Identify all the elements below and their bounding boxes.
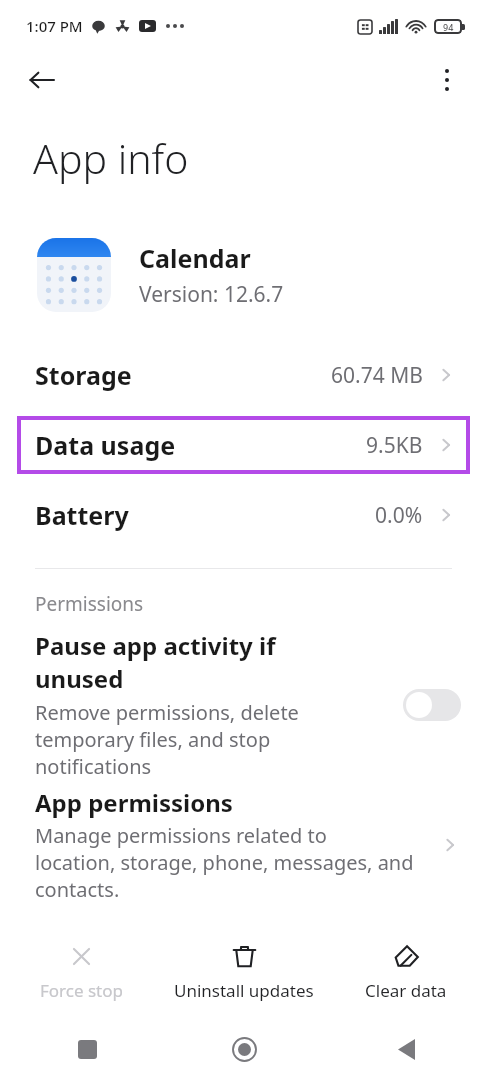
button[interactable]: Pause app activity if unused toggle [403, 689, 461, 721]
button[interactable]: Uninstall updates [163, 937, 325, 1008]
staticText: Data usage [35, 428, 176, 462]
staticText: Force stop [40, 979, 123, 1002]
staticText: 1:07 PM [26, 16, 83, 36]
staticText: location, storage, phone, messages, and [35, 849, 414, 876]
button[interactable]: Data usage [17, 416, 470, 474]
staticText: 60.74 MB [331, 361, 423, 390]
button[interactable]: Pause app activity if [0, 625, 487, 784]
staticText: 94 [443, 21, 454, 33]
staticText: App info [33, 130, 189, 186]
staticText: 0.0% [375, 501, 423, 530]
staticText: Permissions [35, 591, 144, 617]
staticText: Pause app activity if [35, 629, 276, 662]
staticText: temporary files, and stop [35, 726, 271, 753]
button[interactable]: Home [163, 1018, 325, 1080]
button[interactable]: Back [20, 58, 64, 102]
staticText: Calendar [139, 241, 251, 275]
button[interactable]: Back [325, 1018, 487, 1080]
button[interactable]: Storage [0, 340, 487, 410]
staticText: unused [35, 662, 124, 695]
button[interactable]: Force stop [0, 937, 163, 1008]
button[interactable]: Recent apps [0, 1018, 163, 1080]
staticText: Clear data [365, 979, 447, 1002]
staticText: Battery [35, 498, 129, 532]
staticText: contacts. [35, 876, 120, 903]
button[interactable]: More options [425, 58, 469, 102]
button[interactable]: App permissions [0, 784, 487, 903]
staticText: Uninstall updates [174, 979, 314, 1002]
button[interactable]: Clear data [325, 937, 487, 1008]
staticText: Version: 12.6.7 [139, 280, 284, 309]
staticText: 9.5KB [366, 431, 423, 460]
staticText: Storage [35, 358, 132, 392]
staticText: App permissions [35, 786, 233, 819]
staticText: Manage permissions related to [35, 822, 327, 849]
button[interactable]: Battery [0, 480, 487, 550]
staticText: notifications [35, 753, 152, 780]
staticText: Remove permissions, delete [35, 699, 299, 726]
